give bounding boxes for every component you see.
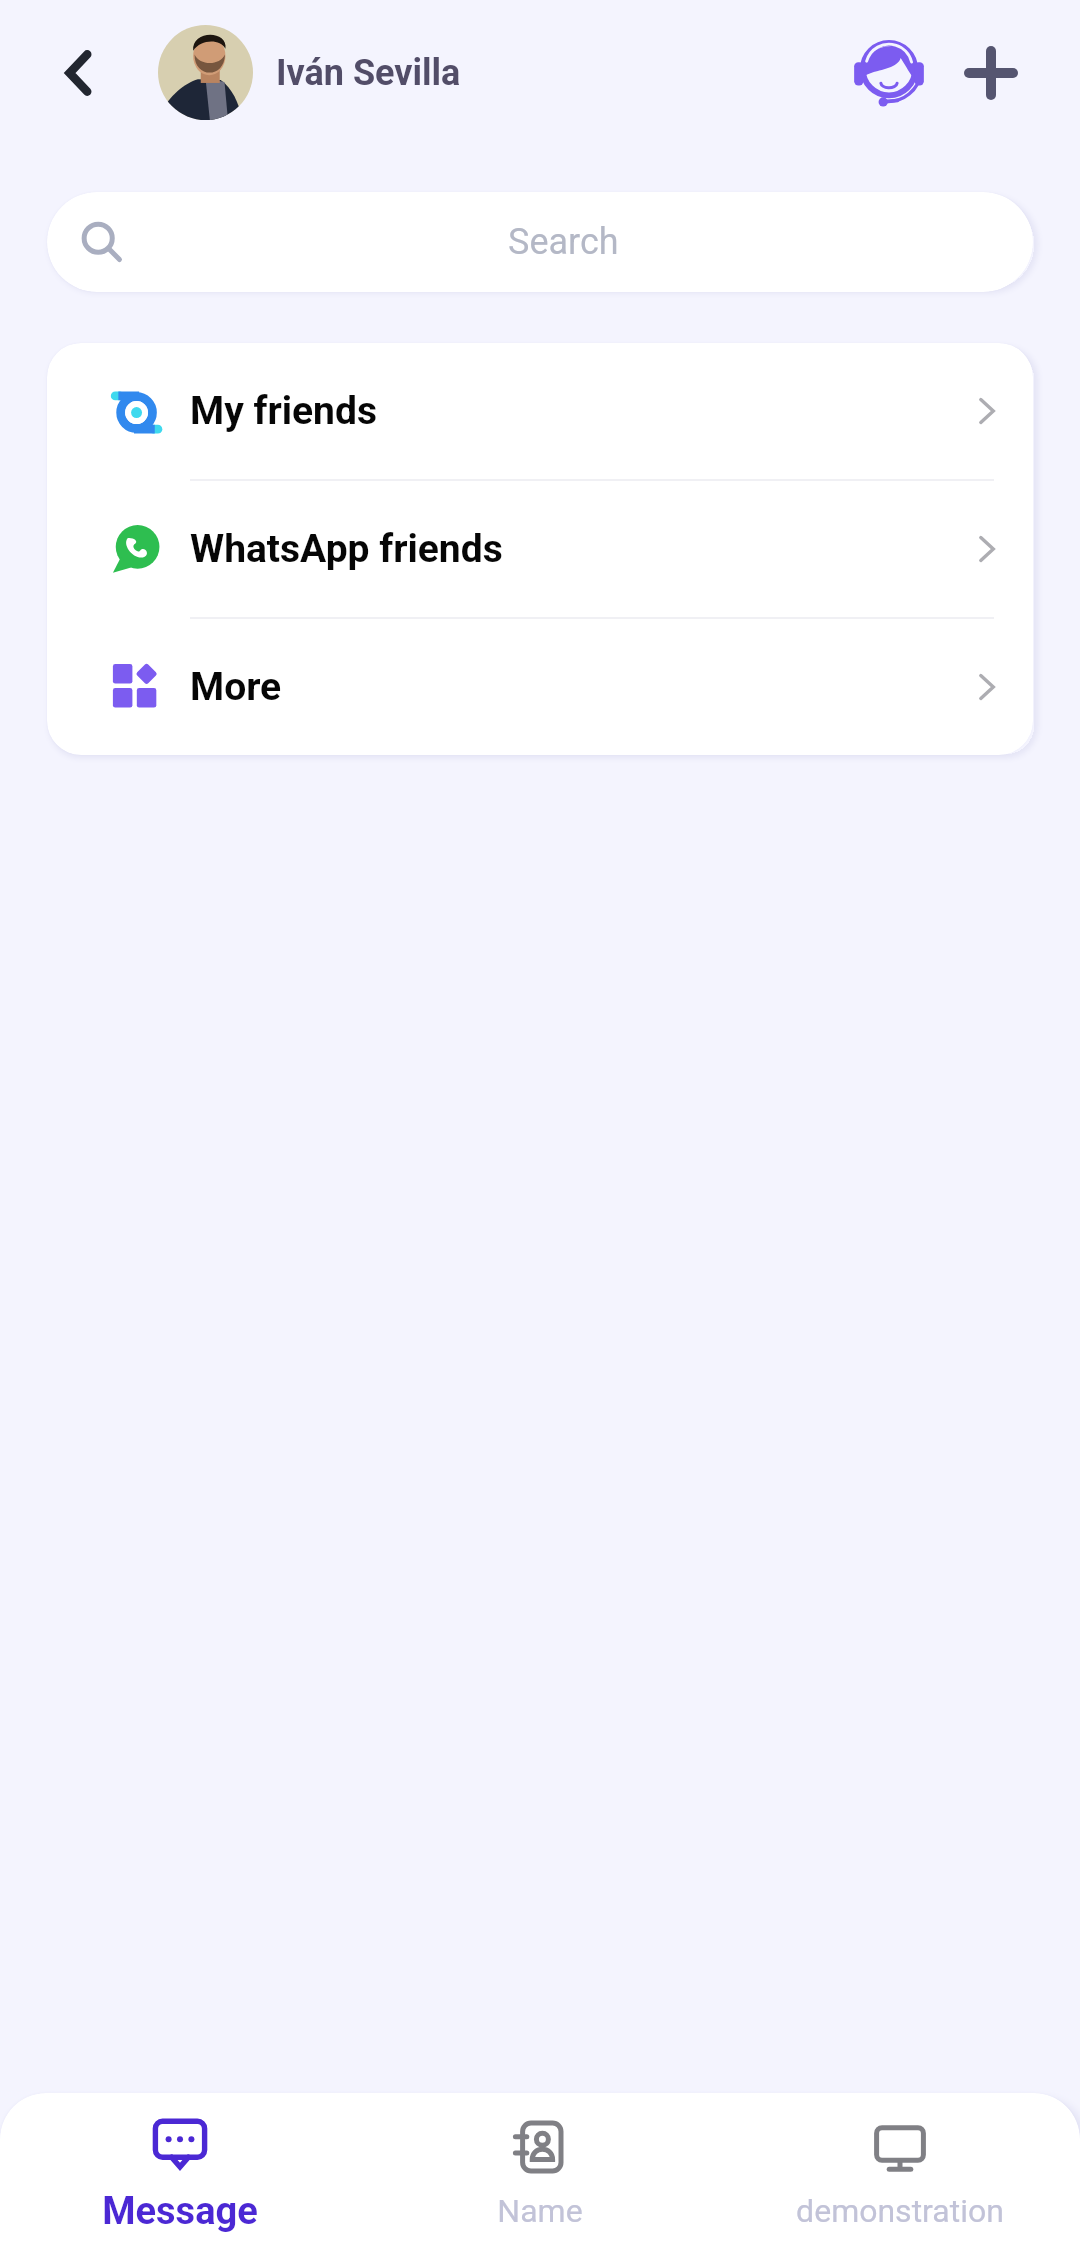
staticText: More: [190, 664, 282, 710]
button[interactable]: Add: [943, 25, 1039, 121]
button[interactable]: Search: [47, 192, 1033, 292]
button[interactable]: Name: [360, 2093, 720, 2253]
button[interactable]: Customer support: [841, 25, 937, 121]
staticText: Message: [102, 2189, 258, 2234]
staticText: Name: [497, 2192, 583, 2230]
button[interactable]: WhatsApp friends: [47, 481, 1033, 617]
staticText: WhatsApp friends: [190, 526, 503, 572]
button[interactable]: Back: [46, 41, 110, 105]
button[interactable]: My friends: [47, 343, 1033, 479]
button[interactable]: demonstration: [720, 2093, 1080, 2253]
staticText: Search: [508, 221, 619, 263]
button[interactable]: More: [47, 619, 1033, 755]
staticText: demonstration: [796, 2192, 1004, 2230]
button[interactable]: Message: [0, 2093, 360, 2253]
staticText: Iván Sevilla: [276, 52, 461, 94]
staticText: My friends: [190, 388, 377, 434]
